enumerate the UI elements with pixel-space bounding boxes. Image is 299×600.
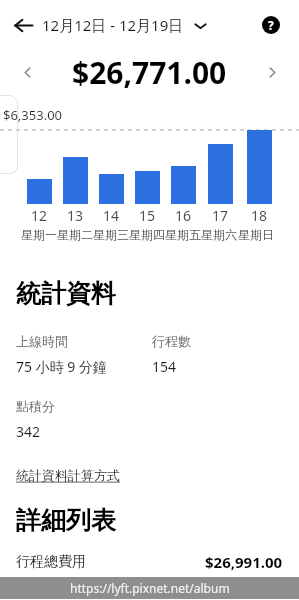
staticText: 星期三: [93, 227, 129, 242]
button[interactable]: 12月12日 - 12月19日: [42, 15, 207, 35]
staticText: 16: [175, 206, 192, 225]
staticText: 12月12日 - 12月19日: [42, 15, 184, 35]
staticText: 15: [139, 206, 156, 225]
button[interactable]: Back: [4, 6, 42, 44]
staticText: 上線時間: [16, 333, 68, 349]
staticText: 75 小時 9 分鐘: [16, 357, 107, 376]
staticText: https://lyft.pixnet.net/album: [70, 580, 230, 596]
staticText: 統計資料: [16, 278, 116, 309]
button[interactable]: 統計資料計算方式: [16, 467, 120, 483]
staticText: 星期二: [57, 227, 93, 242]
button[interactable]: 行程總費用: [16, 552, 283, 572]
staticText: 星期六: [201, 227, 237, 242]
button[interactable]: Previous week: [16, 61, 38, 83]
staticText: 14: [103, 206, 120, 225]
staticText: $26,991.00: [205, 552, 283, 572]
staticText: 18: [251, 206, 268, 225]
staticText: $26,771.00: [72, 52, 227, 93]
staticText: 13: [67, 206, 84, 225]
staticText: 12: [31, 206, 48, 225]
staticText: $6,353.00: [3, 106, 63, 124]
staticText: ?: [268, 17, 274, 33]
staticText: 342: [16, 422, 41, 441]
staticText: 154: [152, 357, 177, 376]
staticText: 行程總費用: [16, 553, 86, 571]
button[interactable]: Help: [255, 9, 287, 41]
staticText: 點積分: [16, 398, 55, 414]
button[interactable]: Next week: [261, 61, 283, 83]
staticText: 星期五: [165, 227, 201, 242]
staticText: 星期一: [21, 227, 57, 242]
staticText: 17: [212, 206, 229, 225]
staticText: 星期四: [129, 227, 165, 242]
staticText: 統計資料計算方式: [16, 467, 120, 483]
staticText: 星期日: [238, 227, 274, 242]
staticText: 詳細列表: [16, 505, 116, 536]
staticText: 行程數: [152, 333, 191, 349]
